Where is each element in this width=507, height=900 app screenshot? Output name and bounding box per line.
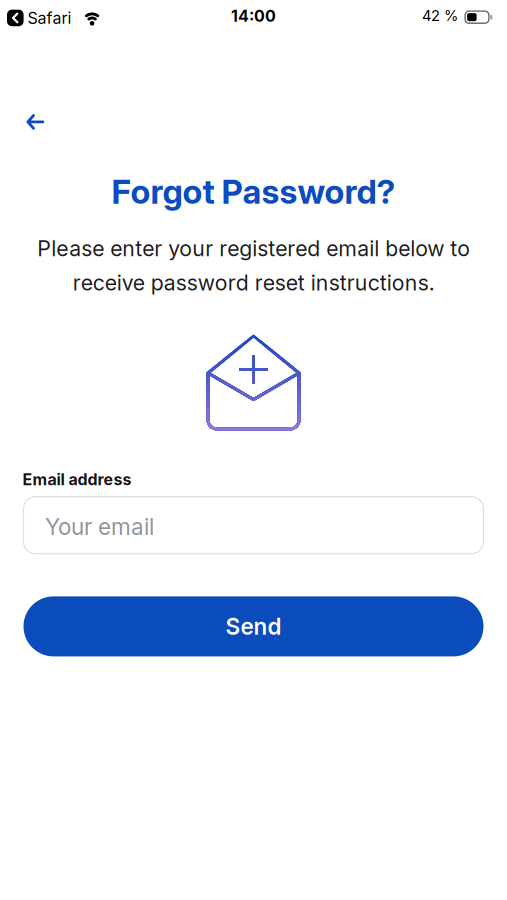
staticText: Email address xyxy=(22,470,131,489)
staticText: 42 % xyxy=(422,7,458,24)
button[interactable]: Send xyxy=(23,596,483,656)
staticText: 14:00 xyxy=(231,6,276,25)
button[interactable]: Email address xyxy=(23,497,483,554)
staticText: Your email xyxy=(45,513,154,540)
staticText: Please enter your registered email below… xyxy=(37,236,470,295)
staticText: Safari xyxy=(28,8,72,27)
button[interactable]: Back xyxy=(18,106,52,137)
staticText: Forgot Password? xyxy=(111,172,395,211)
staticText: Send xyxy=(225,613,281,640)
